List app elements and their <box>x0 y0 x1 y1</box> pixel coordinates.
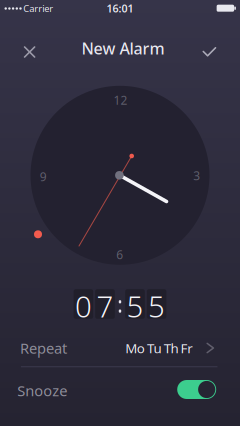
staticText: 5 <box>126 286 143 325</box>
staticText: 6 <box>116 246 123 262</box>
staticText: New Alarm <box>81 38 164 59</box>
staticText: Repeat <box>20 338 67 358</box>
button[interactable]: Repeat <box>0 329 240 366</box>
staticText: 3 <box>193 167 200 183</box>
staticText: Carrier <box>23 2 53 15</box>
staticText: 7 <box>96 286 113 325</box>
button[interactable]: Snooze <box>177 380 216 399</box>
button[interactable]: Save <box>195 38 223 66</box>
staticText: Mo Tu Th Fr <box>125 339 193 357</box>
staticText: 9 <box>40 168 47 184</box>
staticText: Snooze <box>17 381 67 400</box>
staticText: 0 <box>75 286 92 325</box>
staticText: 16:01 <box>106 1 133 15</box>
staticText: 5 <box>148 286 165 325</box>
button[interactable]: Close <box>16 38 44 66</box>
staticText: 12 <box>113 92 127 108</box>
